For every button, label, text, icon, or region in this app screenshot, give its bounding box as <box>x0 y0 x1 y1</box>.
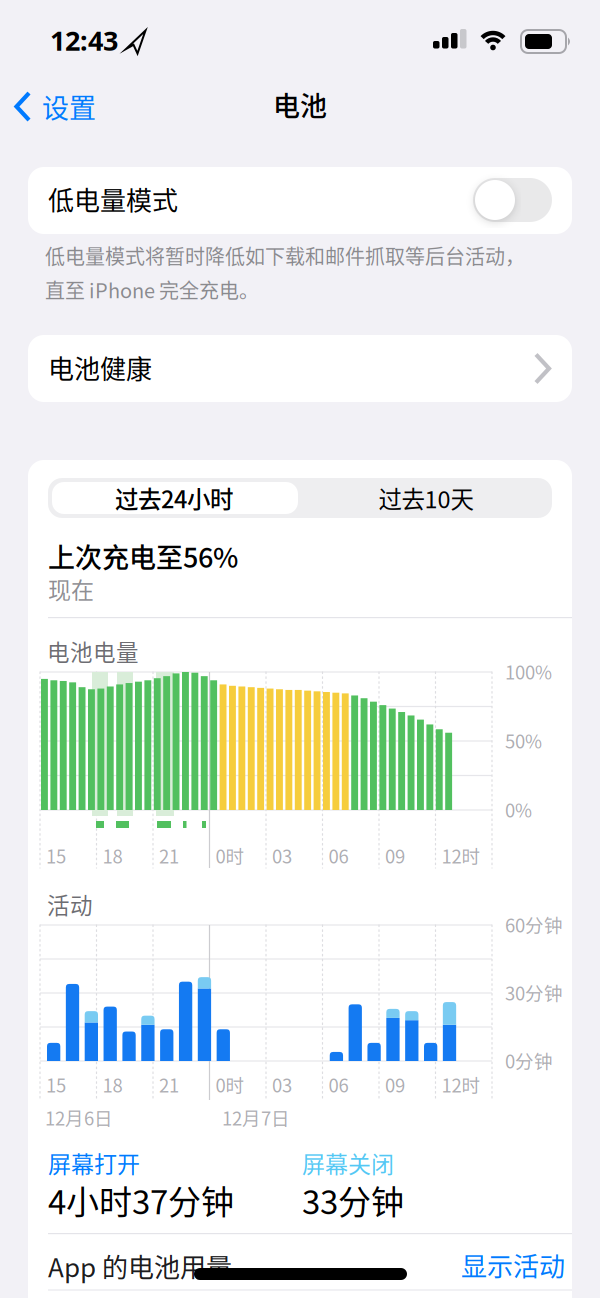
staticText: 上次充电至56% <box>48 536 238 576</box>
staticText: 15 <box>46 842 66 869</box>
staticText: 60分钟 <box>505 911 563 938</box>
staticText: 12:43 <box>50 22 118 59</box>
staticText: 03 <box>272 1071 292 1098</box>
staticText: 12月6日 <box>45 1104 113 1131</box>
button[interactable]: 显示活动 <box>461 1246 565 1284</box>
staticText: 过去24小时 <box>115 481 233 515</box>
staticText: 03 <box>272 842 292 869</box>
staticText: 100% <box>505 658 552 685</box>
staticText: 33分钟 <box>302 1176 404 1224</box>
staticText: 0% <box>505 796 532 823</box>
staticText: 显示活动 <box>461 1246 565 1284</box>
staticText: 直至 iPhone 完全充电。 <box>45 275 259 304</box>
staticText: 12时 <box>441 1071 480 1098</box>
staticText: 06 <box>328 1071 348 1098</box>
staticText: 0时 <box>215 842 244 869</box>
staticText: 09 <box>385 842 405 869</box>
staticText: 09 <box>385 1071 405 1098</box>
staticText: 屏幕打开 <box>48 1146 140 1179</box>
button[interactable]: 过去10天 <box>300 478 552 518</box>
staticText: 12时 <box>441 842 480 869</box>
staticText: 设置 <box>42 87 96 126</box>
button[interactable]: 电池健康 <box>28 335 572 402</box>
staticText: 15 <box>46 1071 66 1098</box>
staticText: 50% <box>505 727 542 754</box>
button[interactable]: 设置 <box>0 87 106 126</box>
staticText: 0时 <box>215 1071 244 1098</box>
staticText: 低电量模式将暂时降低如下载和邮件抓取等后台活动， <box>45 241 525 270</box>
staticText: 21 <box>159 1071 179 1098</box>
staticText: 12月7日 <box>222 1104 290 1131</box>
staticText: 低电量模式 <box>48 180 178 218</box>
staticText: 30分钟 <box>505 979 563 1006</box>
button[interactable]: 过去24小时 <box>48 478 300 518</box>
staticText: App 的电池用量 <box>48 1247 232 1285</box>
staticText: 现在 <box>48 572 94 605</box>
staticText: 18 <box>102 842 122 869</box>
staticText: 18 <box>102 1071 122 1098</box>
staticText: 屏幕关闭 <box>302 1146 394 1179</box>
staticText: 4小时37分钟 <box>48 1176 234 1224</box>
button[interactable]: 低电量模式 <box>473 178 552 222</box>
staticText: 过去10天 <box>378 481 473 515</box>
staticText: 0分钟 <box>505 1047 553 1074</box>
staticText: 06 <box>328 842 348 869</box>
staticText: 电池健康 <box>48 348 152 386</box>
staticText: 电池 <box>273 85 327 124</box>
staticText: 活动 <box>47 888 93 921</box>
staticText: 电池电量 <box>47 635 139 668</box>
staticText: 21 <box>159 842 179 869</box>
